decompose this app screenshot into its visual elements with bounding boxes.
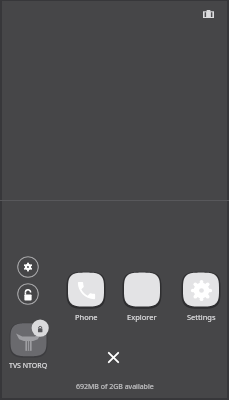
other: Battery [203,10,214,18]
button[interactable]: Close all [105,349,122,366]
button[interactable]: Lock [17,283,39,305]
staticText: TVS NTORQ [9,361,48,371]
staticText: Explorer [127,312,157,322]
staticText: Phone [75,312,98,322]
staticText: Settings [187,312,216,322]
button[interactable]: Settings [17,256,39,278]
staticText: 692MB of 2GB available [76,382,154,392]
button[interactable]: Phone [66,271,106,322]
button[interactable]: Settings [181,271,221,322]
button[interactable]: TVS NTORQ [9,322,48,371]
button[interactable]: Explorer [122,271,162,322]
